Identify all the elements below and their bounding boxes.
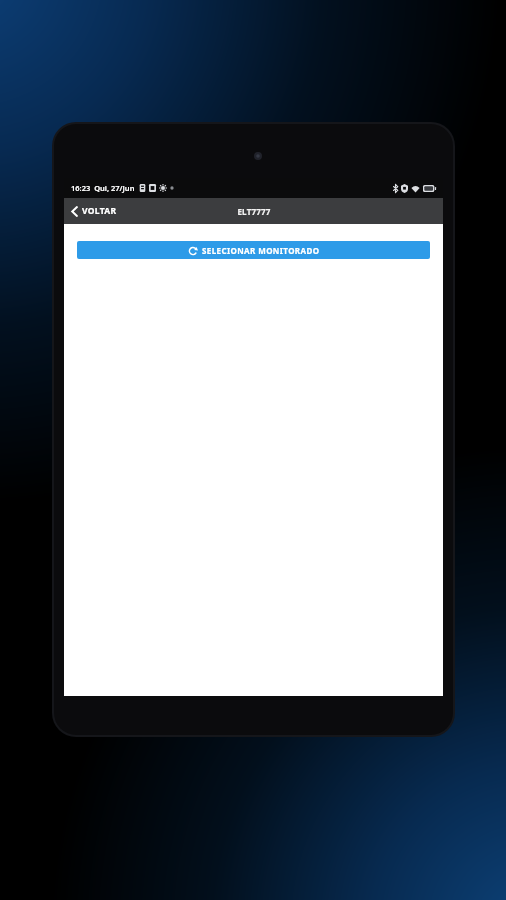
button[interactable]: SELECIONAR MONITORADO [77,241,430,259]
staticText: 16:23 Qui, 27/Jun [71,183,135,193]
other: Back [71,206,78,217]
button[interactable]: Back [64,198,127,224]
staticText: VOLTAR [82,205,117,217]
staticText: ELT7777 [237,206,271,217]
staticText: SELECIONAR MONITORADO [202,245,320,256]
